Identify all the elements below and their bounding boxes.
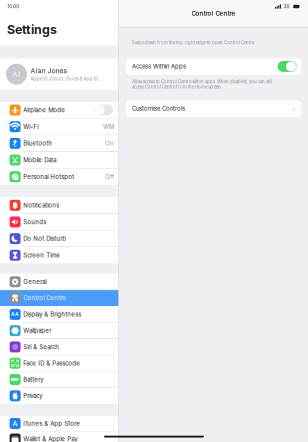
staticText: Notifications — [23, 202, 59, 209]
button[interactable]: Do Not Disturb — [0, 230, 118, 247]
staticText: Swipe down from the top-right edge to op… — [132, 40, 255, 45]
button[interactable]: Airplane Mode — [0, 102, 118, 118]
staticText: Siri & Search — [23, 343, 59, 351]
staticText: Personal Hotspot — [23, 173, 74, 180]
staticText: Alan Jones — [30, 67, 67, 75]
staticText: Off — [105, 173, 114, 180]
staticText: General — [23, 278, 46, 285]
button[interactable]: Sounds — [0, 214, 118, 230]
button[interactable]: Customise Controls — [119, 100, 308, 117]
staticText: Customise Controls — [132, 105, 185, 112]
staticText: Settings — [7, 22, 57, 37]
button[interactable]: Wallet & Apple Pay — [0, 431, 118, 442]
button[interactable]: iTunes & App Store — [0, 416, 118, 431]
staticText: 30 — [284, 4, 290, 9]
staticText: AA — [11, 311, 19, 317]
button[interactable]: AJ — [0, 59, 118, 90]
button[interactable]: AA — [0, 306, 118, 322]
staticText: Allow access to Control Centre within ap… — [132, 79, 272, 89]
staticText: Wallet & Apple Pay — [23, 435, 77, 442]
staticText: Access Within Apps — [132, 63, 186, 70]
staticText: Control Centre — [191, 10, 235, 17]
staticText: Apple ID, iCloud, iTunes & App St… — [30, 76, 101, 81]
staticText: 10:00 — [7, 4, 19, 9]
staticText: Do Not Disturb — [23, 235, 66, 242]
staticText: Face ID & Passcode — [23, 360, 80, 367]
staticText: On — [105, 140, 114, 147]
staticText: Wi-Fi — [23, 123, 38, 130]
button[interactable]: Control Centre — [0, 290, 118, 306]
button[interactable]: Personal Hotspot — [0, 169, 118, 185]
staticText: AJ — [12, 70, 20, 78]
staticText: Mobile Data — [23, 156, 56, 164]
staticText: Display & Brightness — [23, 311, 81, 318]
button[interactable]: Privacy — [0, 388, 118, 404]
button[interactable]: Notifications — [0, 197, 118, 213]
staticText: Sounds — [23, 218, 46, 226]
staticText: Bluetooth — [23, 140, 52, 147]
button[interactable]: Wallpaper — [0, 323, 118, 338]
button[interactable]: Face ID & Passcode — [0, 355, 118, 371]
button[interactable]: Wi-Fi — [0, 119, 118, 135]
button[interactable]: Siri & Search — [0, 339, 118, 355]
button[interactable]: Mobile Data — [0, 152, 118, 168]
staticText: Wallpaper — [23, 327, 51, 334]
staticText: Screen Time — [23, 252, 60, 259]
staticText: › — [292, 104, 295, 113]
staticText: iTunes & App Store — [23, 420, 80, 427]
button[interactable]: General — [0, 274, 118, 290]
staticText: Control Centre — [23, 294, 66, 302]
button[interactable]: Bluetooth — [0, 135, 118, 151]
button[interactable]: Battery — [0, 372, 118, 387]
staticText: Privacy — [23, 392, 42, 399]
staticText: WM — [103, 123, 114, 130]
button[interactable]: Screen Time — [0, 247, 118, 263]
staticText: Airplane Mode — [23, 106, 65, 114]
staticText: Battery — [23, 376, 43, 383]
